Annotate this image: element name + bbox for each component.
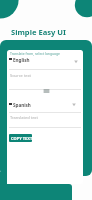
staticText: Source text	[10, 73, 32, 78]
button[interactable]: Select target language	[71, 101, 77, 107]
staticText: English	[13, 57, 30, 63]
staticText: Spanish	[13, 102, 31, 108]
staticText: Translated text	[10, 115, 38, 120]
staticText: COPY TEXT	[11, 136, 32, 141]
button[interactable]	[7, 55, 83, 69]
button[interactable]	[7, 98, 83, 112]
button[interactable]: COPY TEXT	[9, 134, 32, 142]
staticText: Translate from, select language	[10, 51, 60, 56]
button[interactable]: Select source language	[73, 58, 79, 64]
staticText: Simple Easy UI	[11, 27, 67, 37]
button[interactable]: Swap languages	[43, 87, 50, 94]
